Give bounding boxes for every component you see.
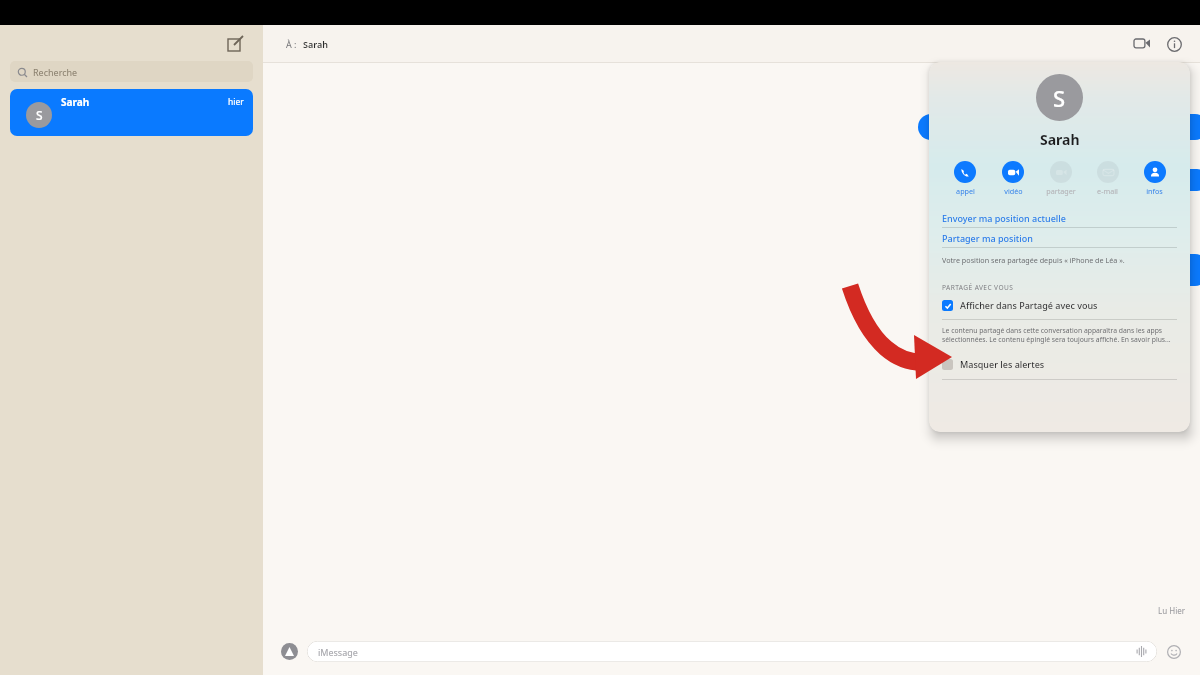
button[interactable]: infos: [1131, 161, 1178, 196]
button[interactable]: vidéo: [989, 161, 1037, 196]
staticText: PARTAGÉ AVEC VOUS: [942, 283, 1014, 292]
staticText: S: [36, 107, 43, 123]
button[interactable]: Masquer les alertes: [942, 358, 1177, 370]
button[interactable]: Emoji: [1166, 644, 1182, 660]
staticText: vidéo: [1004, 186, 1023, 196]
button[interactable]: Envoyer ma position actuelle: [929, 208, 1190, 227]
button[interactable]: e-mail: [1084, 161, 1131, 196]
staticText: À :: [286, 38, 297, 50]
staticText: S: [1053, 83, 1066, 113]
staticText: Votre position sera partagée depuis « iP…: [942, 255, 1125, 265]
staticText: Envoyer ma position actuelle: [942, 212, 1066, 224]
button[interactable]: iMessage: [307, 641, 1157, 662]
staticText: Le contenu partagé dans cette conversati…: [942, 326, 1177, 344]
staticText: iMessage: [318, 646, 358, 658]
staticText: Afficher dans Partagé avec vous: [960, 299, 1098, 311]
staticText: Sarah: [61, 95, 90, 109]
button[interactable]: Partager ma position: [929, 228, 1190, 247]
staticText: appel: [956, 186, 975, 196]
staticText: Masquer les alertes: [960, 358, 1045, 370]
staticText: infos: [1146, 186, 1163, 196]
staticText: Sarah: [1040, 130, 1080, 149]
staticText: e-mail: [1097, 186, 1118, 196]
staticText: Sarah: [303, 38, 328, 50]
button[interactable]: FaceTime vidéo: [1129, 31, 1155, 57]
button[interactable]: appel: [941, 161, 989, 196]
staticText: partager: [1046, 186, 1076, 196]
button[interactable]: Apps: [281, 643, 298, 660]
button[interactable]: partager: [1037, 161, 1084, 196]
staticText: hier: [228, 96, 244, 108]
button[interactable]: Nouveau message: [223, 31, 247, 55]
staticText: Lu Hier: [1158, 605, 1186, 616]
button[interactable]: Infos: [1161, 31, 1187, 57]
staticText: Partager ma position: [942, 232, 1033, 244]
button[interactable]: Afficher dans Partagé avec vous: [942, 299, 1177, 311]
button[interactable]: Recherche: [10, 61, 253, 82]
staticText: Recherche: [33, 66, 78, 78]
button[interactable]: S: [10, 89, 253, 136]
